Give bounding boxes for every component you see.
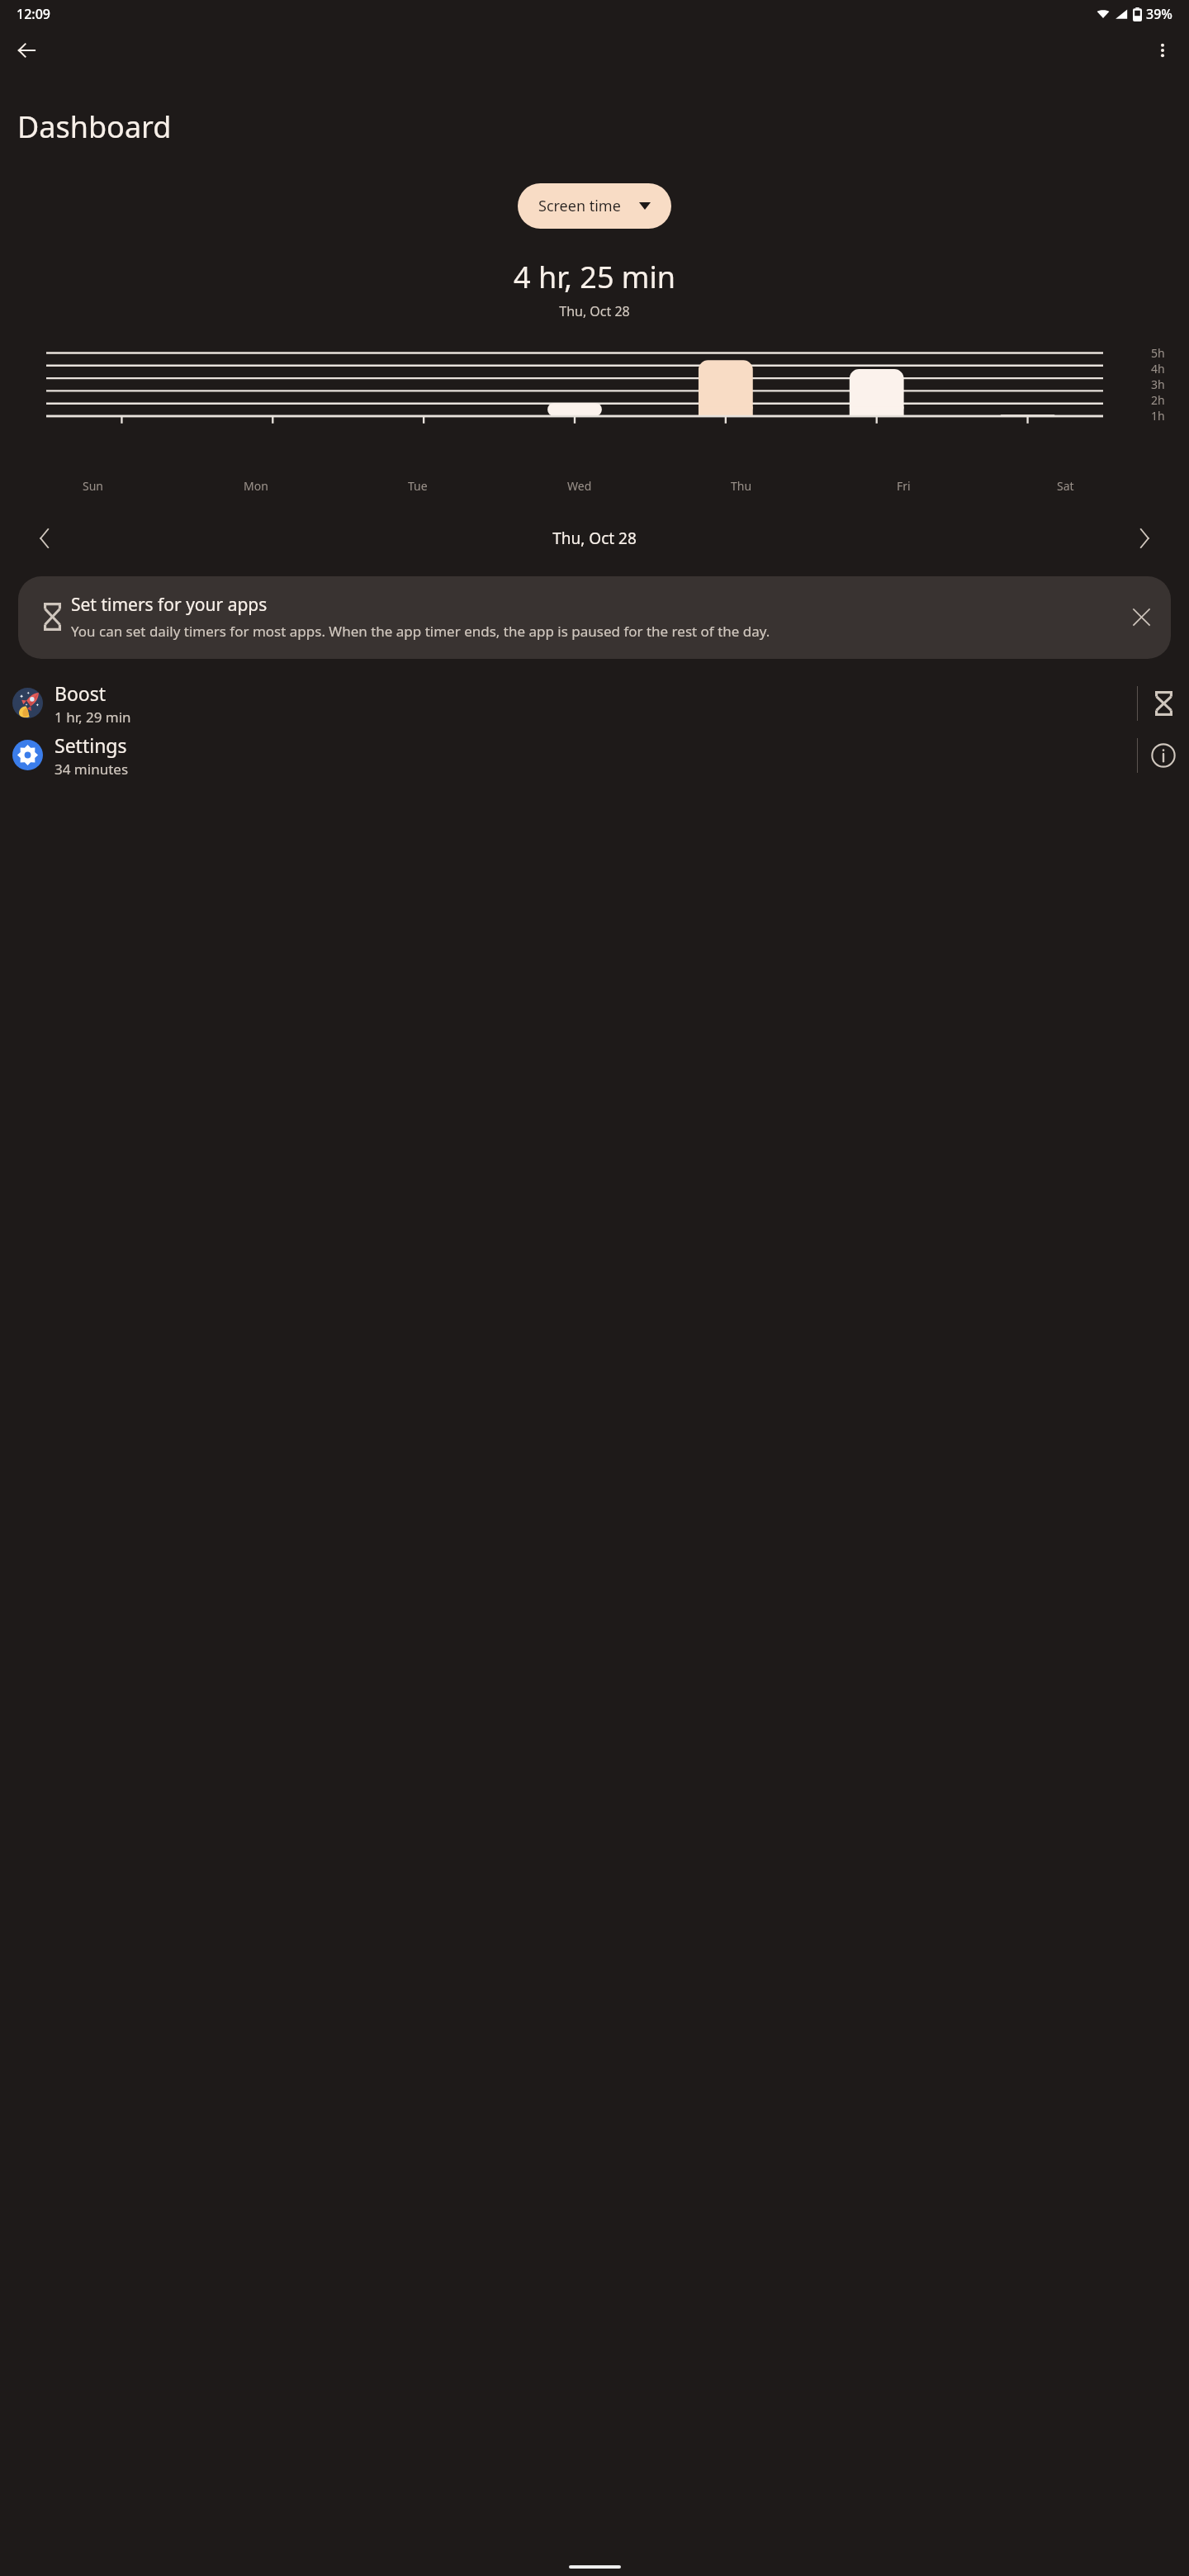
staticText: Boost (54, 680, 107, 706)
staticText: 4 hr, 25 min (0, 257, 1189, 297)
staticText: Settings (54, 732, 127, 758)
staticText: Thu, Oct 28 (64, 528, 1125, 549)
staticText: Screen time (538, 196, 621, 216)
button[interactable]: Set app timer (1138, 677, 1189, 729)
staticText: 1 hr, 29 min (54, 708, 131, 727)
button[interactable]: Dismiss (1123, 599, 1159, 635)
button[interactable]: Back (7, 31, 46, 70)
staticText: 4h (1151, 361, 1165, 376)
button[interactable]: Screen time (518, 183, 671, 229)
button[interactable]: Set timers for your apps (18, 576, 1171, 659)
button[interactable]: App info (1138, 729, 1189, 781)
button[interactable]: Previous day (25, 519, 64, 558)
staticText: 3h (1151, 376, 1165, 392)
staticText: Fri (897, 478, 911, 494)
staticText: You can set daily timers for most apps. … (71, 622, 770, 641)
staticText: Dashboard (17, 107, 172, 147)
button[interactable]: More options (1143, 31, 1182, 70)
staticText: Sun (83, 478, 103, 494)
staticText: 5h (1151, 345, 1165, 361)
staticText: Set timers for your apps (71, 593, 268, 617)
staticText: Tue (408, 478, 428, 494)
button[interactable]: Boost (0, 677, 1189, 729)
staticText: 2h (1151, 392, 1165, 408)
staticText: Sat (1057, 478, 1074, 494)
staticText: Thu (731, 478, 752, 494)
staticText: Thu, Oct 28 (0, 302, 1189, 320)
button[interactable]: Next day (1125, 519, 1164, 558)
staticText: 39% (1146, 5, 1172, 23)
staticText: 12:09 (17, 5, 50, 23)
staticText: Mon (244, 478, 268, 494)
staticText: 34 minutes (54, 760, 129, 779)
button[interactable]: Settings (0, 729, 1189, 781)
staticText: Wed (567, 478, 592, 494)
staticText: 1h (1151, 408, 1165, 421)
